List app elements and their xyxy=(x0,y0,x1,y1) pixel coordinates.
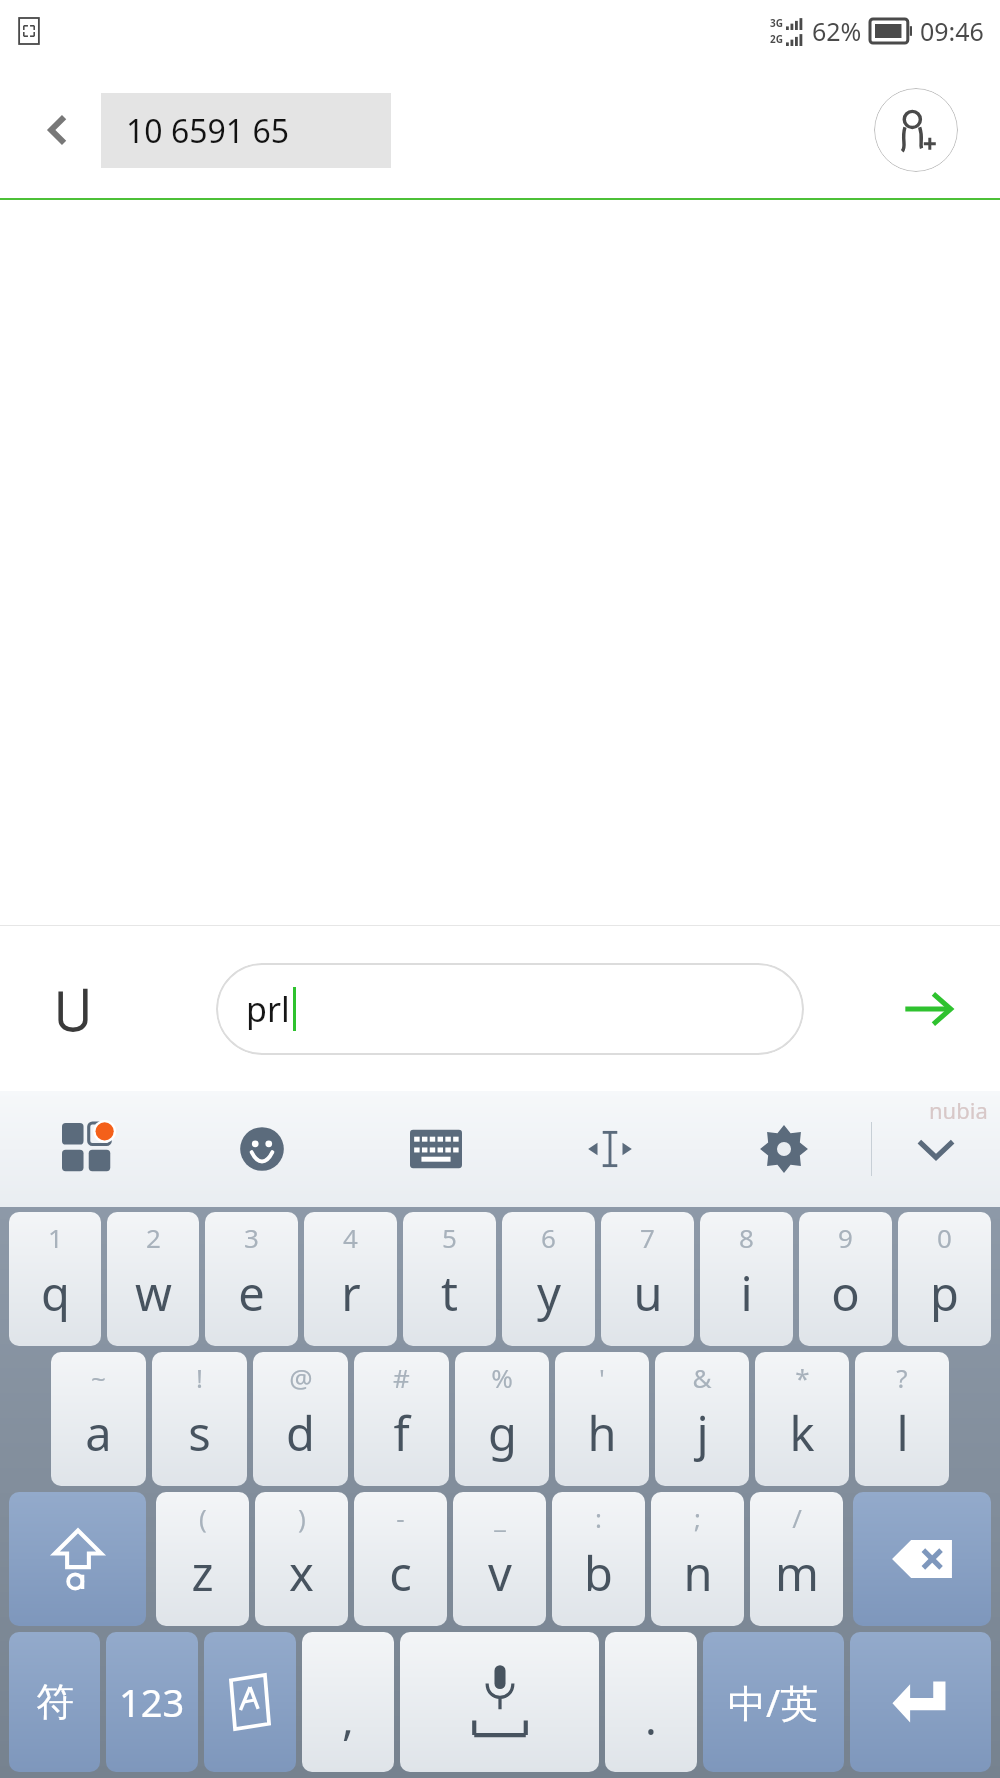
staticText: w xyxy=(135,1261,172,1325)
staticText: k xyxy=(789,1401,815,1465)
button[interactable]: 10 6591 65 xyxy=(101,93,391,168)
staticText: s xyxy=(188,1401,211,1465)
button[interactable]: Back xyxy=(34,106,82,154)
staticText: z xyxy=(191,1541,214,1605)
button[interactable]: Emoji xyxy=(175,1091,349,1207)
button[interactable]: - xyxy=(354,1492,447,1626)
button[interactable]: . xyxy=(605,1632,697,1772)
staticText: b xyxy=(584,1541,613,1605)
button[interactable]: Enter xyxy=(850,1632,991,1772)
staticText: t xyxy=(441,1261,458,1325)
button[interactable]: 8 xyxy=(700,1212,793,1346)
staticText: m xyxy=(775,1541,819,1605)
button[interactable]: , xyxy=(302,1632,394,1772)
staticText: 中/英 xyxy=(728,1676,819,1728)
button[interactable]: Cursor xyxy=(523,1091,697,1207)
staticText: prl xyxy=(246,986,290,1032)
staticText: y xyxy=(537,1261,561,1325)
button[interactable]: prl xyxy=(216,963,804,1055)
staticText: # xyxy=(393,1360,410,1395)
button[interactable]: Shift xyxy=(9,1492,146,1626)
button[interactable]: # xyxy=(354,1352,449,1486)
staticText: , xyxy=(342,1688,354,1748)
staticText: u xyxy=(633,1261,663,1325)
button[interactable]: % xyxy=(455,1352,549,1486)
staticText: v xyxy=(488,1541,512,1605)
staticText: 3G xyxy=(770,16,783,30)
button[interactable]: Hide keyboard xyxy=(872,1091,1000,1207)
button[interactable]: Backspace xyxy=(853,1492,991,1626)
staticText: 0 xyxy=(937,1220,952,1255)
staticText: 8 xyxy=(739,1220,754,1255)
button[interactable]: ? xyxy=(855,1352,949,1486)
staticText: ; xyxy=(694,1500,701,1535)
button[interactable]: ) xyxy=(255,1492,348,1626)
staticText: ' xyxy=(599,1360,605,1395)
button[interactable]: Keyboard layout xyxy=(349,1091,523,1207)
staticText: n xyxy=(683,1541,713,1605)
button[interactable]: 5 xyxy=(403,1212,496,1346)
staticText: 符 xyxy=(36,1678,74,1726)
staticText: 6 xyxy=(541,1220,556,1255)
staticText: / xyxy=(792,1500,802,1535)
button[interactable]: 123 xyxy=(106,1632,198,1772)
button[interactable]: / xyxy=(750,1492,843,1626)
button[interactable]: ( xyxy=(156,1492,249,1626)
staticText: i xyxy=(740,1261,753,1325)
staticText: 3 xyxy=(244,1220,259,1255)
staticText: 5 xyxy=(442,1220,457,1255)
staticText: 9 xyxy=(838,1220,853,1255)
button[interactable]: 0 xyxy=(898,1212,991,1346)
button[interactable]: 3 xyxy=(205,1212,298,1346)
button[interactable]: * xyxy=(755,1352,849,1486)
button[interactable]: Settings xyxy=(697,1091,871,1207)
staticText: . xyxy=(645,1688,657,1748)
staticText: x xyxy=(289,1541,314,1605)
staticText: * xyxy=(795,1360,810,1395)
button[interactable]: Add contact xyxy=(874,88,958,172)
button[interactable]: 7 xyxy=(601,1212,694,1346)
button[interactable]: 2 xyxy=(107,1212,199,1346)
button[interactable]: Apps xyxy=(0,1091,175,1207)
staticText: l xyxy=(896,1401,909,1465)
staticText: r xyxy=(341,1261,361,1325)
button[interactable]: ; xyxy=(651,1492,744,1626)
staticText: c xyxy=(389,1541,412,1605)
button[interactable]: @ xyxy=(253,1352,348,1486)
staticText: ( xyxy=(199,1500,207,1535)
staticText: d xyxy=(286,1401,315,1465)
button[interactable]: Space xyxy=(400,1632,599,1772)
staticText: ~ xyxy=(91,1360,106,1395)
staticText: - xyxy=(396,1500,405,1535)
staticText: 1 xyxy=(48,1220,63,1255)
button[interactable]: & xyxy=(655,1352,749,1486)
staticText: a xyxy=(85,1401,112,1465)
staticText: nubia xyxy=(929,1095,988,1125)
button[interactable]: 符 xyxy=(9,1632,100,1772)
staticText: e xyxy=(238,1261,265,1325)
button[interactable]: 9 xyxy=(799,1212,892,1346)
staticText: ) xyxy=(298,1500,306,1535)
staticText: 2G xyxy=(770,32,783,46)
staticText: j xyxy=(696,1401,709,1465)
button[interactable]: : xyxy=(552,1492,645,1626)
button[interactable]: ~ xyxy=(51,1352,146,1486)
button[interactable]: ! xyxy=(152,1352,247,1486)
button[interactable]: _ xyxy=(453,1492,546,1626)
staticText: 10 6591 65 xyxy=(126,109,290,153)
button[interactable]: Language xyxy=(204,1632,296,1772)
button[interactable]: ' xyxy=(555,1352,649,1486)
staticText: o xyxy=(831,1261,860,1325)
button[interactable]: Attach xyxy=(42,978,104,1040)
button[interactable]: 4 xyxy=(304,1212,397,1346)
staticText: & xyxy=(692,1360,712,1395)
button[interactable]: 1 xyxy=(9,1212,101,1346)
button[interactable]: 6 xyxy=(502,1212,595,1346)
staticText: _ xyxy=(494,1500,506,1535)
staticText: % xyxy=(491,1360,513,1395)
staticText: p xyxy=(930,1261,959,1325)
button[interactable]: Send xyxy=(892,973,964,1045)
staticText: ! xyxy=(196,1360,203,1395)
button[interactable]: 中/英 xyxy=(703,1632,844,1772)
staticText: 7 xyxy=(640,1220,655,1255)
